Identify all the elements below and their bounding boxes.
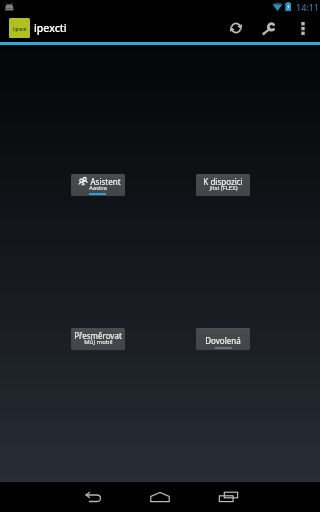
button[interactable]: Přesměrovat: [71, 328, 125, 350]
staticText: Asistent: [90, 176, 121, 187]
staticText: Aastra: [89, 184, 107, 192]
button[interactable]: More options: [292, 14, 314, 42]
button[interactable]: ipex logo: [9, 18, 30, 38]
staticText: Přesměrovat: [74, 330, 122, 341]
button[interactable]: Recent apps: [214, 483, 242, 511]
button[interactable]: Home: [146, 483, 174, 511]
button[interactable]: K dispozici: [196, 174, 250, 196]
staticText: ipex: [13, 25, 27, 32]
button[interactable]: Back: [79, 483, 107, 511]
staticText: Dovolená: [205, 335, 241, 346]
button[interactable]: Dovolená: [196, 328, 250, 350]
staticText: Jitsi (FLEX): [209, 184, 238, 192]
staticText: 14:11: [296, 1, 320, 13]
button[interactable]: Refresh: [222, 14, 249, 42]
button[interactable]: Settings: [256, 14, 283, 42]
staticText: Můj mobil: [84, 338, 113, 346]
button[interactable]: Asistent Aastra: [71, 174, 125, 196]
staticText: ipexcti: [34, 21, 67, 35]
staticText: K dispozici: [203, 176, 243, 187]
